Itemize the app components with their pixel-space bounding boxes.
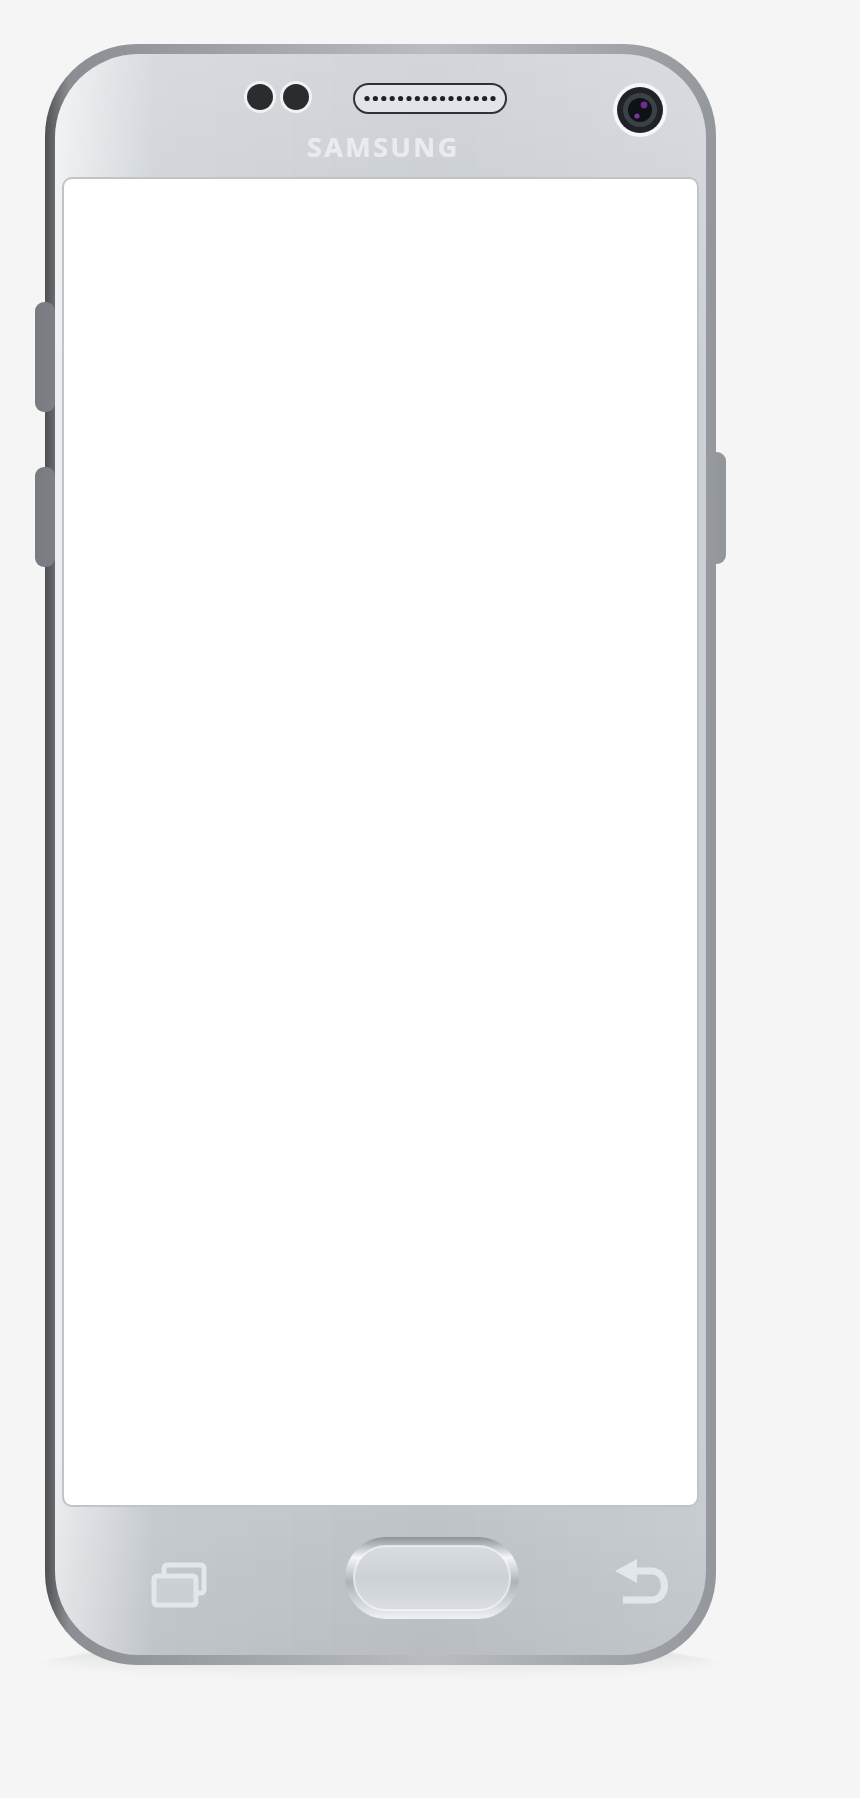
button[interactable]: Recent apps [140,1545,220,1625]
button[interactable]: Back [603,1545,683,1625]
button[interactable]: Home [345,1537,519,1619]
staticText: SAMSUNG [307,128,460,164]
